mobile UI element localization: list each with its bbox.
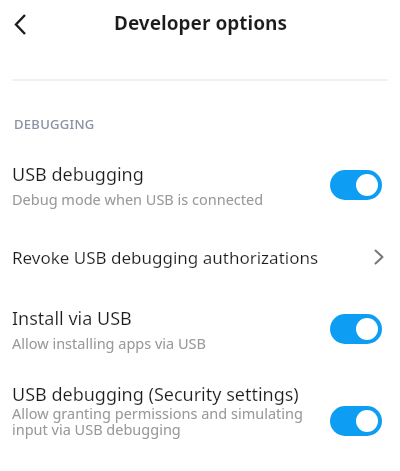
staticText: Allow installing apps via USB — [12, 333, 206, 353]
button[interactable]: Install via USB — [0, 288, 400, 370]
staticText: USB debugging — [12, 162, 144, 187]
staticText: USB debugging (Security settings) — [12, 382, 299, 407]
staticText: Revoke USB debugging authorizations — [12, 246, 319, 269]
staticText: Debug mode when USB is connected — [12, 189, 264, 209]
staticText: Developer options — [114, 10, 287, 36]
button[interactable]: USB debugging — [0, 144, 400, 226]
button[interactable]: USB debugging (Security settings) — [0, 370, 400, 471]
staticText: DEBUGGING — [14, 115, 95, 133]
button[interactable] — [2, 5, 42, 45]
staticText: Install via USB — [12, 306, 132, 331]
staticText: Allow granting permissions and simulatin… — [12, 403, 303, 440]
button[interactable]: Revoke USB debugging authorizations — [0, 226, 400, 288]
